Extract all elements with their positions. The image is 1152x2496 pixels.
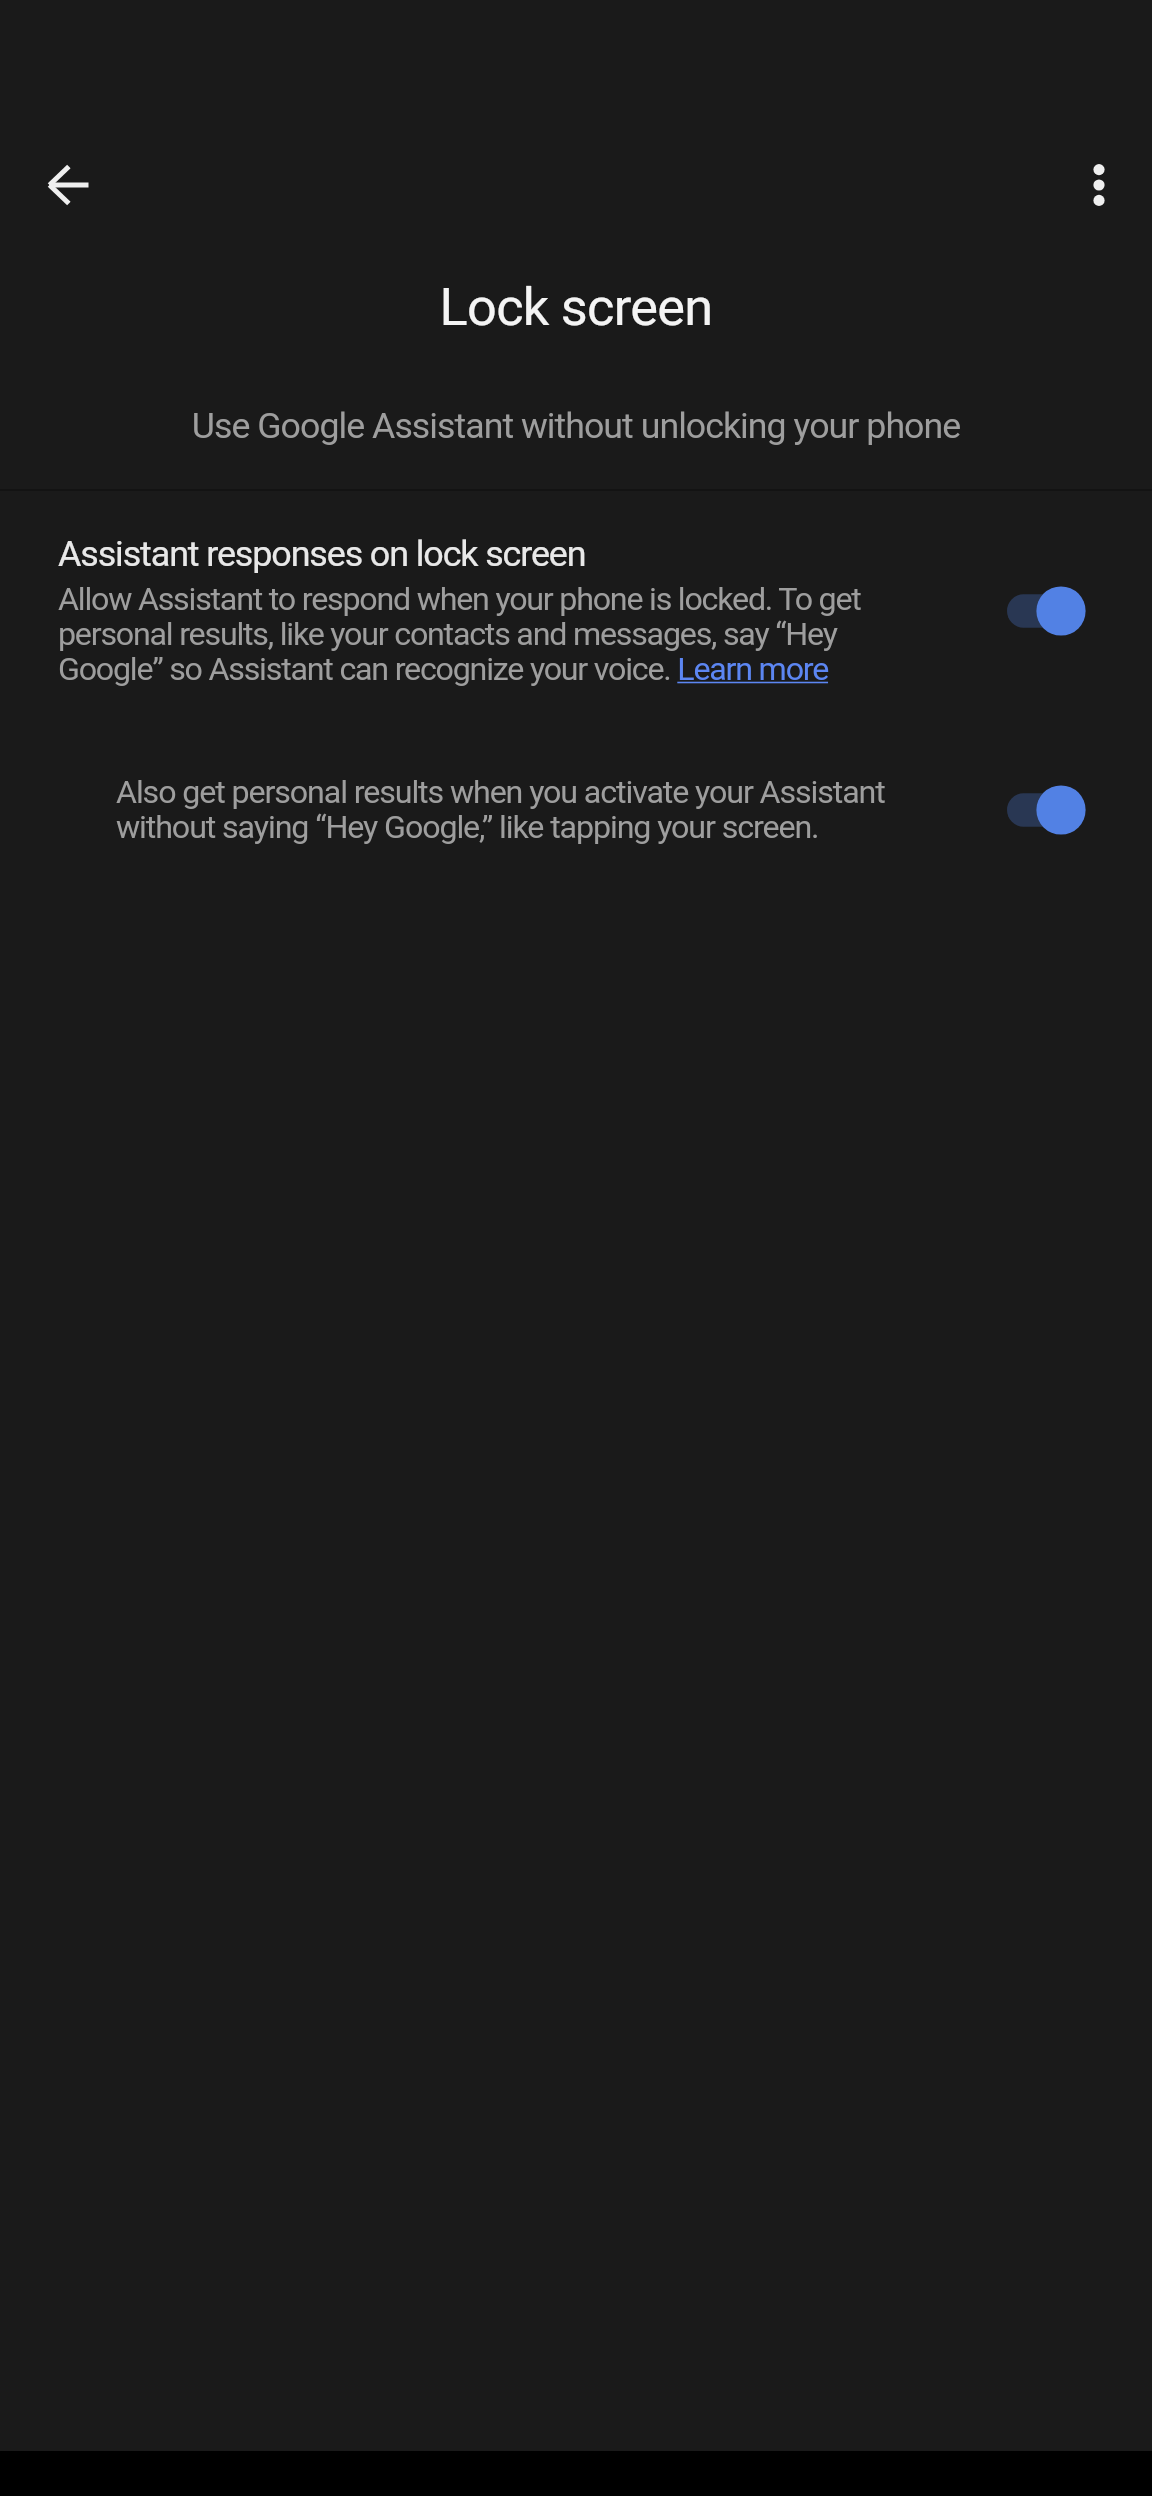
staticText: Use Google Assistant without unlocking y… (0, 405, 1152, 447)
button[interactable]: Assistant responses on lock screen (0, 491, 1152, 726)
staticText: Also get personal results when you activ… (116, 773, 891, 846)
staticText: Lock screen (0, 276, 1152, 337)
button[interactable]: Also get personal results when you activ… (0, 726, 1152, 894)
button[interactable]: Assistant responses on lock screen (993, 575, 1101, 647)
staticText: Allow Assistant to respond when your pho… (58, 580, 870, 688)
button[interactable]: Navigate up (21, 137, 117, 233)
button[interactable]: More options (1051, 137, 1147, 233)
staticText: Assistant responses on lock screen (58, 533, 586, 575)
button[interactable]: Also get personal results (993, 774, 1101, 846)
